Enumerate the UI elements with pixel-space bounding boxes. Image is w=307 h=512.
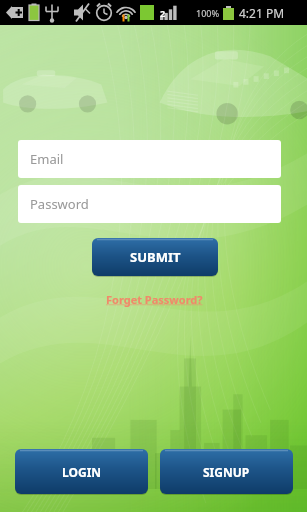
- staticText: Email: [30, 150, 64, 168]
- staticText: Password: [30, 195, 89, 213]
- staticText: 4:21 PM: [239, 5, 285, 21]
- button[interactable]: Forget Password?: [99, 289, 209, 309]
- staticText: 100%: [196, 7, 220, 19]
- button[interactable]: Email: [18, 140, 281, 178]
- button[interactable]: LOGIN: [15, 449, 148, 494]
- staticText: 2: [160, 7, 166, 19]
- staticText: Forget Password?: [106, 292, 203, 307]
- button[interactable]: SIGNUP: [160, 449, 293, 494]
- button[interactable]: Password: [18, 185, 281, 223]
- staticText: SIGNUP: [203, 464, 250, 480]
- staticText: LOGIN: [62, 464, 102, 480]
- button[interactable]: SUBMIT: [92, 238, 218, 276]
- staticText: SUBMIT: [130, 248, 181, 266]
